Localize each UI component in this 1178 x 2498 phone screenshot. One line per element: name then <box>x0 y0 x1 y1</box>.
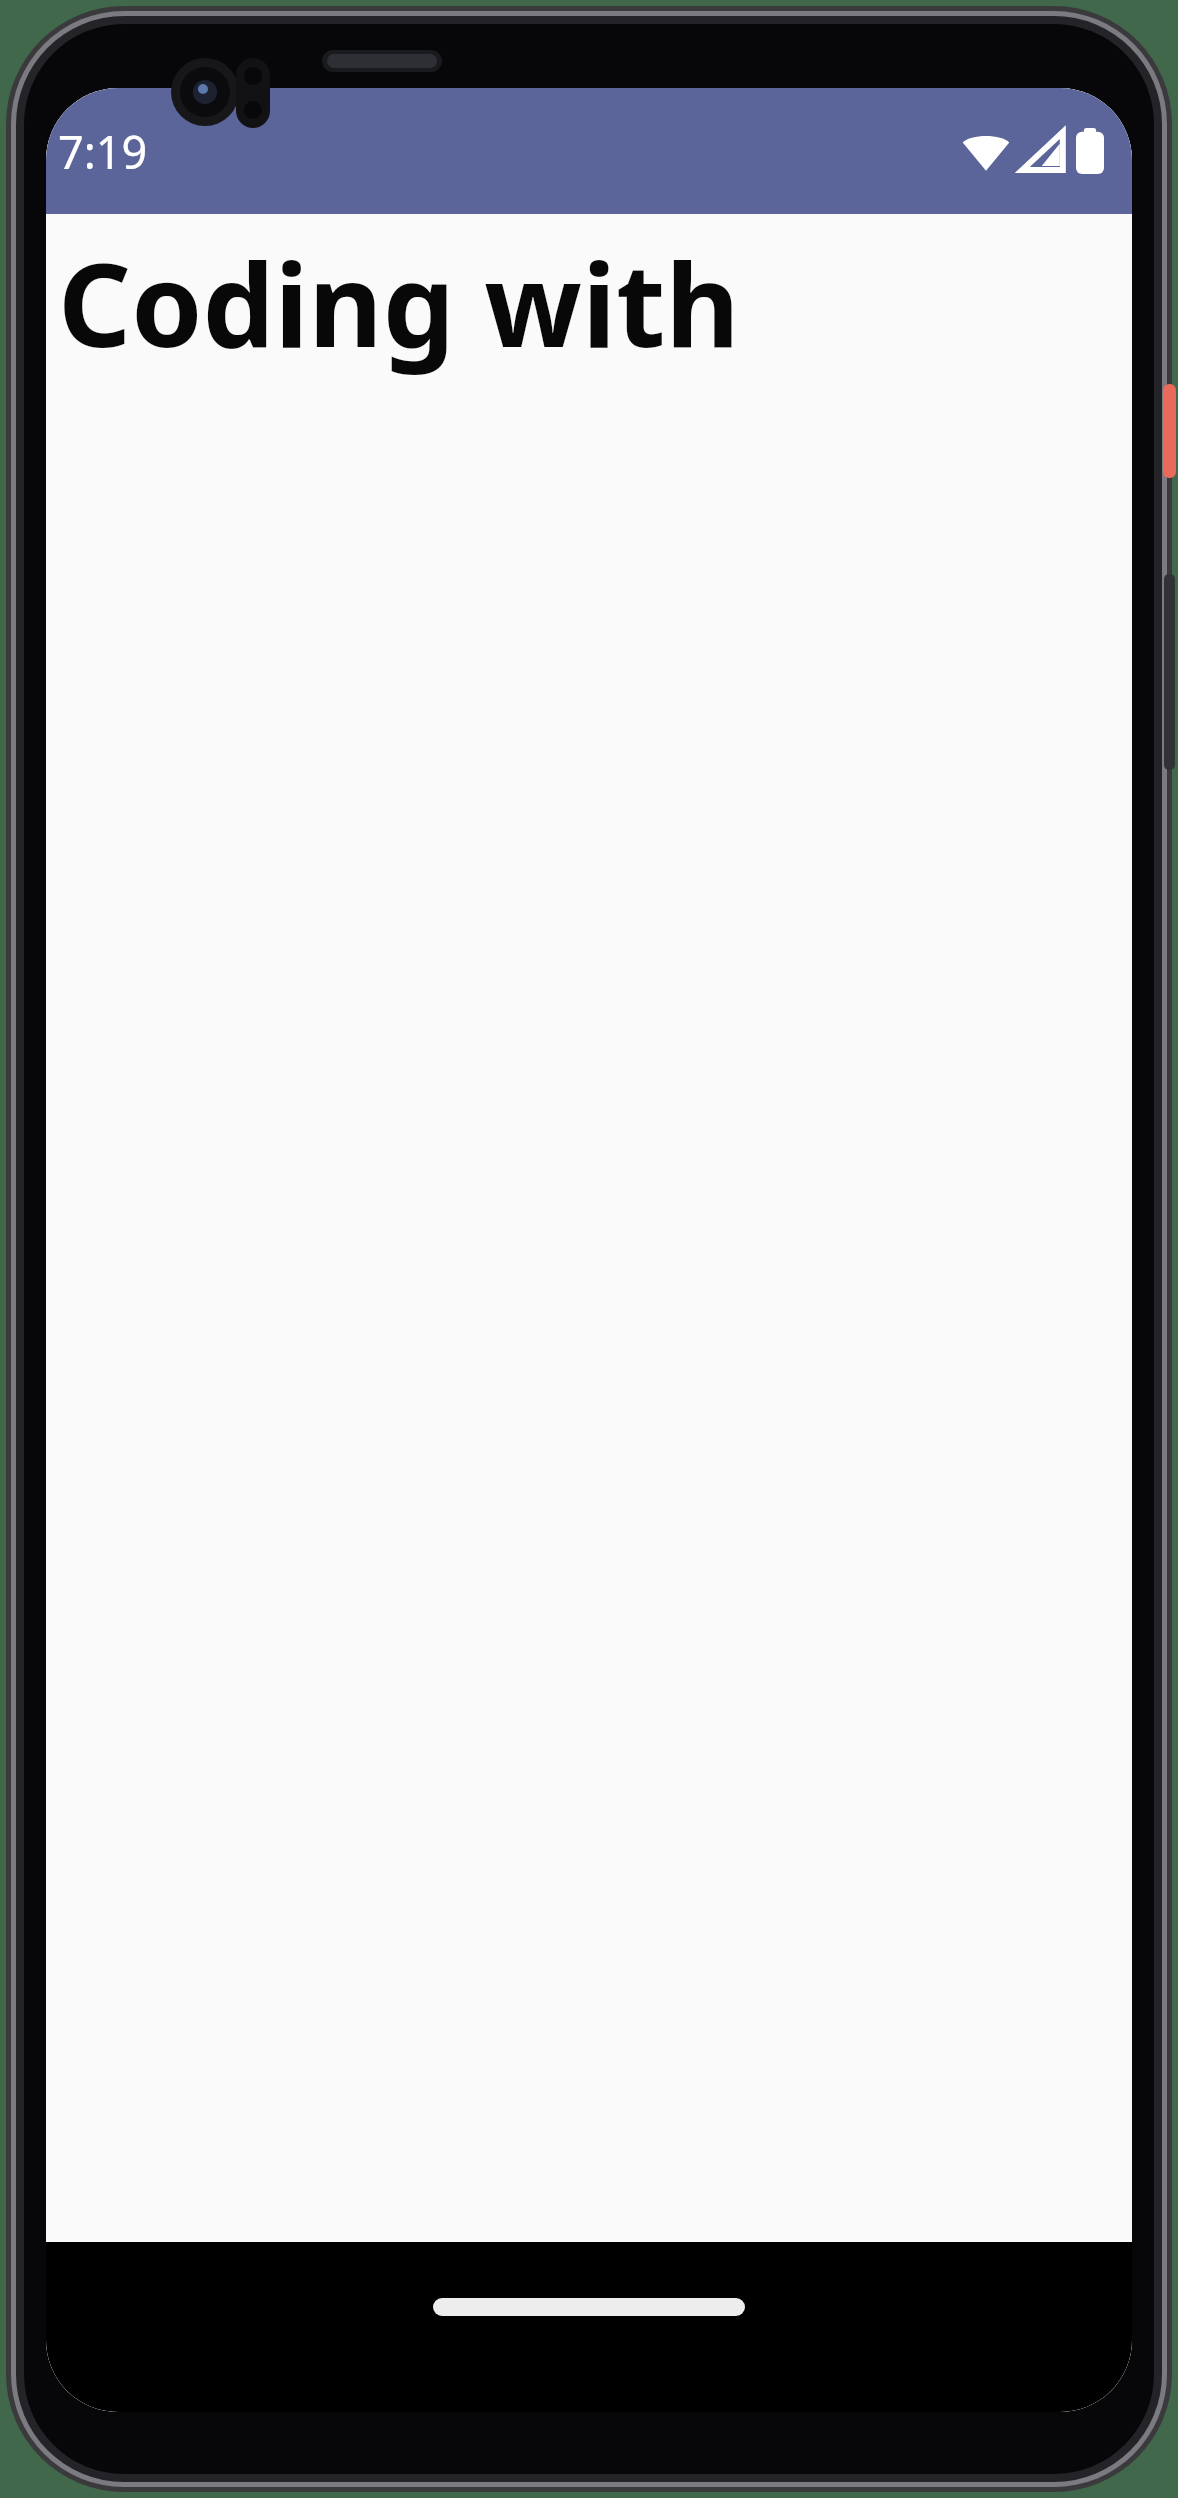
button[interactable]: Home <box>433 2298 745 2316</box>
button[interactable]: Coding with Rashid <box>46 214 1132 390</box>
staticText: 7:19 <box>58 121 148 182</box>
staticText: Coding with Rashid <box>58 225 1132 380</box>
